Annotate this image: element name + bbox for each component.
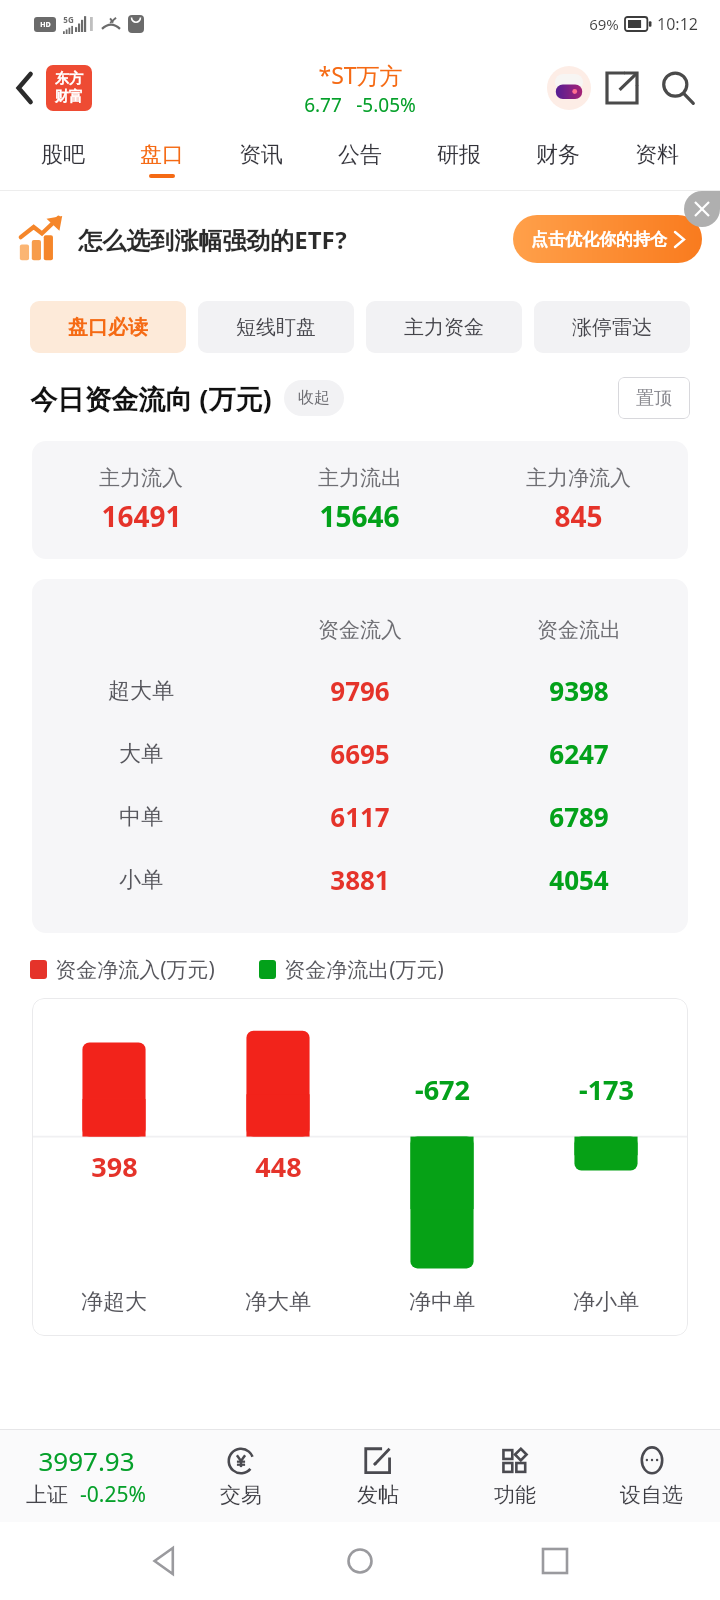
button[interactable]: 超大单: [32, 659, 688, 722]
staticText: -0.25%: [80, 1480, 146, 1509]
button[interactable]: 研报: [409, 128, 508, 190]
staticText: 资金流入: [318, 617, 402, 643]
button[interactable]: 财务: [508, 128, 607, 190]
button[interactable]: 小单: [32, 848, 688, 911]
staticText: 净超大: [81, 1288, 147, 1316]
staticText: 主力净流入: [526, 465, 631, 491]
button[interactable]: 收起: [284, 380, 344, 416]
staticText: 功能: [494, 1482, 536, 1508]
staticText: 今日资金流向 (万元): [30, 380, 272, 417]
button[interactable]: Close: [684, 191, 720, 227]
staticText: 9398: [549, 673, 609, 708]
button[interactable]: Assistant: [544, 63, 594, 113]
staticText: 短线盯盘: [236, 315, 316, 340]
staticText: HD: [40, 20, 51, 30]
staticText: 10:12: [657, 13, 698, 35]
staticText: 净小单: [573, 1288, 639, 1316]
staticText: 盘口必读: [68, 315, 148, 340]
button[interactable]: Recents: [525, 1531, 585, 1591]
staticText: 资金净流入(万元): [55, 955, 215, 984]
staticText: 6695: [330, 736, 390, 771]
button[interactable]: 主力资金: [366, 301, 522, 353]
button[interactable]: 交易: [172, 1430, 309, 1522]
staticText: 448: [255, 1148, 302, 1185]
button[interactable]: 置顶: [618, 377, 690, 419]
staticText: 4054: [549, 862, 609, 897]
staticText: 6247: [549, 736, 609, 771]
button[interactable]: 公告: [310, 128, 409, 190]
staticText: 中单: [119, 803, 163, 831]
staticText: 主力流出: [318, 465, 402, 491]
staticText: 主力流入: [99, 465, 183, 491]
staticText: 涨停雷达: [572, 315, 652, 340]
staticText: 5G: [63, 14, 74, 25]
button[interactable]: Search: [650, 60, 706, 116]
button[interactable]: 盘口必读: [30, 301, 186, 353]
staticText: 公告: [338, 141, 382, 169]
button[interactable]: 短线盯盘: [198, 301, 354, 353]
staticText: -5.05%: [356, 92, 416, 118]
staticText: 6117: [330, 799, 390, 834]
staticText: 资金净流出(万元): [284, 955, 444, 984]
staticText: 收起: [298, 388, 330, 408]
button[interactable]: 发帖: [309, 1430, 446, 1522]
staticText: 点击优化你的持仓: [531, 229, 667, 250]
staticText: 财务: [536, 141, 580, 169]
button[interactable]: 盘口: [112, 128, 211, 190]
staticText: 资料: [635, 141, 679, 169]
staticText: 3881: [330, 862, 390, 897]
staticText: 9796: [330, 673, 390, 708]
staticText: 398: [91, 1148, 138, 1185]
staticText: 大单: [119, 740, 163, 768]
staticText: -173: [579, 1071, 634, 1108]
staticText: 财富: [55, 88, 83, 106]
staticText: 设自选: [620, 1482, 683, 1508]
staticText: 资金流出: [537, 617, 621, 643]
button[interactable]: 涨停雷达: [534, 301, 690, 353]
staticText: 怎么选到涨幅强劲的ETF?: [78, 223, 347, 256]
staticText: 资讯: [239, 141, 283, 169]
staticText: 845: [554, 497, 603, 535]
button[interactable]: 怎么选到涨幅强劲的ETF?: [18, 191, 702, 287]
staticText: 主力资金: [404, 315, 484, 340]
button[interactable]: 资料: [607, 128, 706, 190]
button[interactable]: 中单: [32, 785, 688, 848]
staticText: 置顶: [636, 387, 672, 410]
button[interactable]: Home: [330, 1531, 390, 1591]
staticText: 小单: [119, 866, 163, 894]
staticText: -672: [415, 1071, 470, 1108]
staticText: 股吧: [41, 141, 85, 169]
button[interactable]: 点击优化你的持仓: [513, 215, 702, 263]
button[interactable]: 东方: [46, 65, 92, 111]
button[interactable]: 3997.93: [0, 1430, 172, 1522]
staticText: 交易: [220, 1482, 262, 1508]
button[interactable]: Share: [594, 60, 650, 116]
button[interactable]: Back: [135, 1531, 195, 1591]
staticText: 69%: [589, 14, 619, 34]
button[interactable]: 设自选: [583, 1430, 720, 1522]
staticText: 净大单: [245, 1288, 311, 1316]
staticText: 6789: [549, 799, 609, 834]
staticText: 16491: [101, 497, 182, 535]
button[interactable]: Back: [0, 63, 50, 113]
staticText: 研报: [437, 141, 481, 169]
staticText: 发帖: [357, 1482, 399, 1508]
staticText: 15646: [319, 497, 400, 535]
button[interactable]: 大单: [32, 722, 688, 785]
staticText: 6.77: [304, 92, 342, 118]
staticText: 超大单: [108, 677, 174, 705]
button[interactable]: 股吧: [14, 128, 112, 190]
staticText: *ST万方: [318, 59, 403, 90]
staticText: 盘口: [140, 141, 184, 169]
staticText: 净中单: [409, 1288, 475, 1316]
button[interactable]: 功能: [446, 1430, 583, 1522]
button[interactable]: 资讯: [211, 128, 310, 190]
staticText: 3997.93: [38, 1443, 135, 1478]
staticText: 上证: [26, 1482, 68, 1508]
staticText: 东方: [55, 70, 83, 88]
